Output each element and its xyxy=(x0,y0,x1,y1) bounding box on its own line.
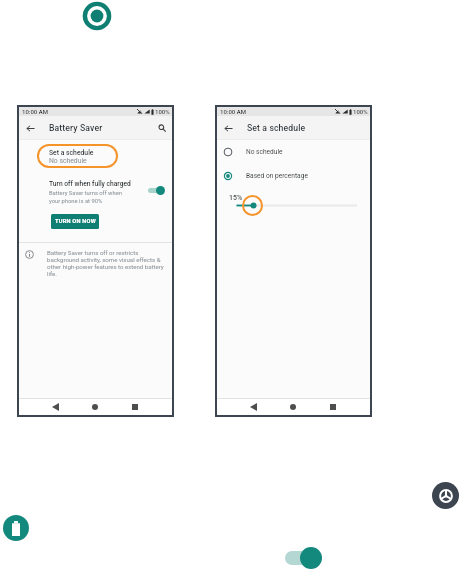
button[interactable]: Set a schedule xyxy=(18,149,173,165)
button[interactable]: Home xyxy=(286,400,300,414)
staticText: Turn off when fully charged xyxy=(49,180,131,188)
staticText: 10:00 AM xyxy=(22,108,48,115)
button[interactable]: Back xyxy=(22,120,38,136)
staticText: Set a schedule xyxy=(49,149,94,157)
button[interactable]: Home xyxy=(88,400,102,414)
staticText: No schedule xyxy=(49,157,87,165)
staticText: 10:00 AM xyxy=(220,108,246,115)
staticText: Battery Saver turns off when your phone … xyxy=(49,190,122,204)
button[interactable]: Battery Saver xyxy=(3,515,29,541)
button[interactable]: Recents xyxy=(128,400,142,414)
button[interactable]: Toggle on xyxy=(284,547,322,570)
button[interactable]: Turn off when fully charged xyxy=(18,180,173,204)
button[interactable]: Back xyxy=(48,400,62,414)
button[interactable]: Recents xyxy=(326,400,340,414)
staticText: 15% xyxy=(229,194,243,202)
staticText: 100% xyxy=(155,108,170,115)
staticText: Battery Saver turns off or restricts bac… xyxy=(47,249,164,277)
button[interactable]: Based on percentage xyxy=(216,168,371,184)
staticText: 100% xyxy=(353,108,368,115)
button[interactable]: Back xyxy=(220,120,236,136)
button[interactable]: TURN ON NOW xyxy=(51,214,99,229)
button[interactable]: Back xyxy=(246,400,260,414)
staticText: No schedule xyxy=(246,148,283,156)
staticText: Set a schedule xyxy=(247,123,306,133)
staticText: Based on percentage xyxy=(246,172,308,180)
staticText: TURN ON NOW xyxy=(55,218,96,225)
button[interactable]: Driving mode xyxy=(432,482,459,509)
button[interactable]: Search xyxy=(155,121,169,135)
button[interactable]: Radio button selected xyxy=(81,0,113,32)
staticText: Battery Saver xyxy=(49,123,103,133)
button[interactable]: No schedule xyxy=(216,144,371,160)
